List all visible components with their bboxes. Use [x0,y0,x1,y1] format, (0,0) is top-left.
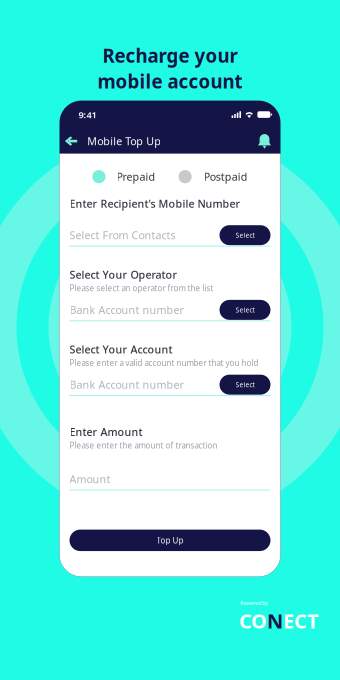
staticText: Select From Contacts [69,228,175,242]
staticText: Select [235,231,254,240]
button[interactable]: Notifications [258,133,271,149]
staticText: Select [235,305,254,314]
staticText: Powered by [240,599,268,606]
button[interactable]: Select [219,300,270,320]
staticText: Postpaid [204,170,248,184]
staticText: Enter Recipient's Mobile Number [69,196,240,211]
staticText: Please select an operator from the list [69,283,213,293]
staticText: Select [235,380,254,389]
staticText: ECT [283,607,319,634]
staticText: Select Your Operator [69,268,177,282]
staticText: Bank Account number [69,378,183,392]
staticText: Top Up [156,535,183,546]
staticText: mobile account [97,69,242,94]
button[interactable]: Back [65,136,77,146]
button[interactable]: Select [219,375,270,395]
button[interactable]: Prepaid [92,170,155,184]
staticText: Select Your Account [69,342,172,356]
staticText: Please enter a valid account number that… [69,357,258,368]
staticText: CO [239,607,267,634]
staticText: N [267,607,283,634]
staticText: 9:41 [78,108,96,121]
staticText: Bank Account number [69,303,183,317]
staticText: Recharge your [102,43,237,68]
button[interactable]: Select [219,225,270,245]
staticText: Please enter the amount of transaction [69,440,217,451]
button[interactable]: Top Up [69,530,270,551]
staticText: Enter Amount [69,425,142,439]
button[interactable]: Postpaid [178,170,248,184]
staticText: Mobile Top Up [87,134,161,148]
staticText: Prepaid [116,170,155,184]
staticText: Amount [69,472,110,486]
